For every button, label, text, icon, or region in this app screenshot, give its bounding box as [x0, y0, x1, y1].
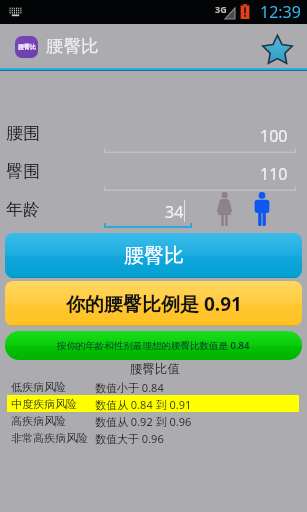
staticText: 数值从 0.92 到 0.96	[95, 414, 192, 429]
staticText: 高疾病风险	[11, 414, 66, 428]
staticText: 腰臀比	[18, 43, 36, 51]
staticText: 数值从 0.84 到 0.91	[95, 397, 192, 412]
button[interactable]: 腰臀比	[5, 233, 302, 278]
staticText: 数值大于 0.96	[95, 431, 164, 446]
staticText: 年龄	[6, 199, 40, 220]
staticText: 臀围	[6, 161, 40, 182]
staticText: 12:39	[260, 1, 301, 23]
staticText: 腰臀比	[46, 35, 99, 57]
staticText: 按你的年龄和性别最理想的腰臀比数值是 0.84	[57, 339, 250, 352]
staticText: 中度疾病风险	[11, 397, 77, 411]
staticText: 100	[260, 125, 288, 147]
staticText: 低疾病风险	[11, 380, 66, 394]
staticText: 腰围	[6, 123, 40, 144]
staticText: 3G	[215, 3, 227, 15]
button[interactable]: Favorite	[257, 29, 297, 69]
staticText: 数值小于 0.84	[95, 380, 164, 395]
staticText: 34	[165, 201, 184, 223]
button[interactable]: Female	[207, 192, 241, 226]
button[interactable]: Male	[245, 192, 279, 226]
staticText: 你的腰臀比例是 0.91	[66, 291, 242, 317]
staticText: 非常高疾病风险	[11, 431, 88, 445]
staticText: 腰臀比	[124, 243, 184, 268]
staticText: 110	[260, 163, 288, 185]
staticText: 腰臀比值	[130, 361, 180, 377]
